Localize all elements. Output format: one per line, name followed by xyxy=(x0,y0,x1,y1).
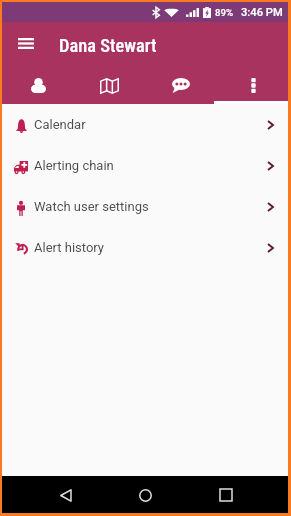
staticText: 89% xyxy=(215,7,233,18)
button[interactable]: Map xyxy=(73,63,144,104)
button[interactable]: Alerting chain xyxy=(2,145,288,186)
staticText: Watch user settings xyxy=(34,199,149,214)
button[interactable]: Calendar xyxy=(2,104,288,145)
staticText: Calendar xyxy=(34,117,86,132)
button[interactable]: Back xyxy=(47,477,83,513)
button[interactable]: Chat xyxy=(144,63,216,104)
staticText: Alerting chain xyxy=(34,158,114,173)
button[interactable]: Open navigation menu xyxy=(11,28,41,58)
staticText: 3:46 PM xyxy=(241,6,283,19)
button[interactable]: Alert history xyxy=(2,227,288,268)
button[interactable]: More options xyxy=(216,63,288,104)
staticText: Dana Stewart xyxy=(59,35,157,57)
button[interactable]: Watch user settings xyxy=(2,186,288,227)
button[interactable]: Contacts xyxy=(2,63,73,104)
button[interactable]: Home xyxy=(127,477,163,513)
staticText: Alert history xyxy=(34,240,104,255)
button[interactable]: Recent apps xyxy=(208,477,244,513)
